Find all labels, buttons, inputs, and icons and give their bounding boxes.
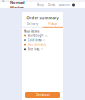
staticText: ● xyxy=(2,0,4,2)
staticText: Free delivery xyxy=(27,43,45,46)
staticText: Pickup xyxy=(48,22,57,26)
staticText: Nomad Market xyxy=(10,0,25,10)
button[interactable]: Nomad Market xyxy=(10,0,25,10)
button[interactable]: Pickup xyxy=(42,22,63,28)
button[interactable]: Tote bag xyxy=(24,47,61,52)
button[interactable]: Free delivery xyxy=(24,42,61,47)
staticText: Deals xyxy=(48,3,55,7)
staticText: x2 xyxy=(45,34,48,37)
staticText: Checkout xyxy=(35,93,49,97)
button[interactable]: Checkout xyxy=(25,92,60,98)
staticText: Sourdough xyxy=(27,34,43,37)
button[interactable]: Cold brew xyxy=(24,38,61,42)
button[interactable]: Sourdough xyxy=(24,33,61,38)
staticText: Shop xyxy=(37,3,44,7)
staticText: Tote bag xyxy=(27,47,39,51)
button[interactable]: Deals xyxy=(46,3,57,7)
staticText: Order summary xyxy=(26,15,58,20)
staticText: x1 xyxy=(43,38,46,42)
staticText: x1 xyxy=(41,47,44,51)
staticText: Cold brew xyxy=(27,38,41,42)
button[interactable]: Account xyxy=(57,3,72,7)
staticText: Delivery xyxy=(27,22,38,26)
staticText: Account xyxy=(59,3,70,7)
button[interactable]: Cart xyxy=(72,3,75,6)
button[interactable]: Shop xyxy=(35,3,46,7)
staticText: Your items xyxy=(24,30,39,33)
button[interactable]: Delivery xyxy=(22,22,42,28)
